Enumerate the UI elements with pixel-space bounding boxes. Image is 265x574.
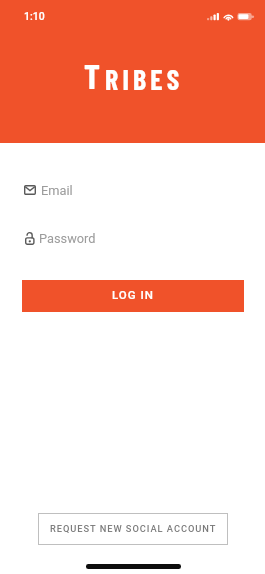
button[interactable]: REQUEST NEW SOCIAL ACCOUNT (38, 513, 228, 545)
staticText: LOG IN (112, 288, 154, 301)
button[interactable]: LOG IN (22, 280, 244, 312)
other: Password (25, 232, 35, 245)
staticText: 1:10 (24, 10, 45, 22)
button[interactable]: Email (24, 182, 265, 198)
staticText: RIBES (105, 62, 184, 96)
button[interactable]: Password (25, 230, 265, 246)
staticText: REQUEST NEW SOCIAL ACCOUNT (50, 523, 217, 534)
other: Email (24, 185, 36, 195)
staticText: Password (39, 231, 96, 246)
staticText: Email (41, 183, 73, 198)
staticText: T (84, 55, 105, 96)
